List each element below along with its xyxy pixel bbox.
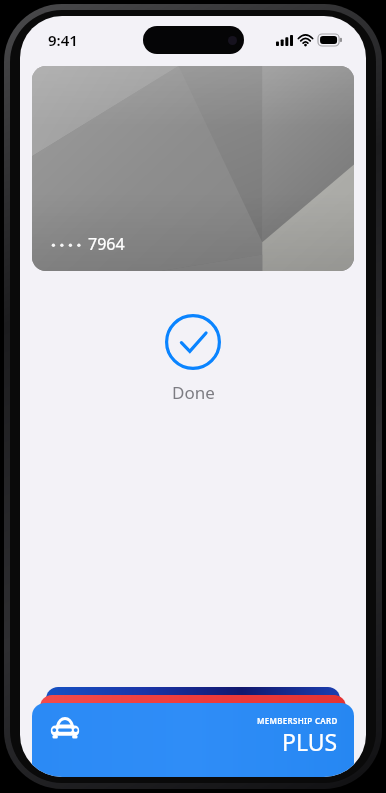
- staticText: PLUS: [282, 726, 338, 757]
- button[interactable]: Done: [164, 313, 222, 371]
- button[interactable]: [46, 687, 340, 747]
- button[interactable]: MEMBERSHIP CARD: [32, 703, 354, 777]
- button[interactable]: 7964: [32, 66, 354, 271]
- staticText: MEMBERSHIP CARD: [257, 715, 338, 726]
- staticText: Done: [172, 381, 215, 404]
- staticText: 7964: [88, 233, 125, 255]
- button[interactable]: [40, 695, 346, 755]
- staticText: 9:41: [48, 30, 78, 50]
